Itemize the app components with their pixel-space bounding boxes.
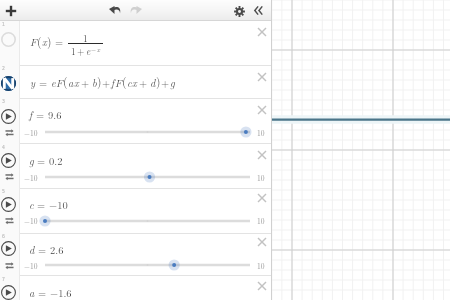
staticText: f xyxy=(111,75,115,90)
button[interactable]: Animate slider xyxy=(1,285,16,300)
staticText: a xyxy=(68,75,74,90)
staticText: 2.6 xyxy=(50,242,64,257)
button[interactable]: Collapse expression list xyxy=(254,6,263,15)
staticText: F xyxy=(56,75,63,90)
staticText: + xyxy=(161,75,170,90)
staticText: −10 xyxy=(24,215,38,226)
staticText: = xyxy=(38,242,47,257)
staticText: ( xyxy=(37,33,42,49)
button[interactable]: Animate slider xyxy=(1,109,16,124)
staticText: = xyxy=(37,197,46,212)
staticText: e xyxy=(51,75,56,90)
button[interactable]: Animate slider xyxy=(1,197,16,212)
staticText: = xyxy=(55,34,64,49)
staticText: ) xyxy=(156,73,161,89)
button[interactable]: Slider direction xyxy=(5,129,14,136)
button[interactable]: Delete expression 2 xyxy=(258,73,266,81)
staticText: 0.2 xyxy=(49,153,63,168)
staticText: 1 xyxy=(83,31,88,44)
staticText: −10 xyxy=(24,260,38,271)
staticText: b xyxy=(92,75,97,90)
staticText: 7 xyxy=(2,277,5,282)
staticText: + xyxy=(102,75,111,90)
staticText: ) xyxy=(47,33,52,49)
staticText: 1 xyxy=(71,44,76,57)
button[interactable]: Settings xyxy=(234,6,245,17)
staticText: ) xyxy=(97,73,102,89)
staticText: 10 xyxy=(257,215,265,226)
staticText: + xyxy=(139,75,148,90)
staticText: −10 xyxy=(24,127,38,138)
staticText: c xyxy=(29,197,34,212)
staticText: 10 xyxy=(257,127,265,138)
staticText: 9.6 xyxy=(48,107,62,122)
staticText: + xyxy=(77,44,85,57)
staticText: 10 xyxy=(257,260,265,271)
button[interactable]: f slider xyxy=(33,125,262,139)
staticText: d xyxy=(29,242,35,257)
button[interactable]: Slider direction xyxy=(5,217,14,224)
button[interactable]: Delete expression 6 xyxy=(258,238,266,246)
staticText: −10 xyxy=(24,172,38,183)
staticText: c xyxy=(127,75,132,90)
staticText: F xyxy=(30,34,37,49)
staticText: f xyxy=(29,107,33,122)
button[interactable]: Slider direction xyxy=(5,173,14,180)
staticText: −1.6 xyxy=(50,285,72,300)
staticText: 1 xyxy=(2,22,5,27)
button[interactable]: Delete expression 7 xyxy=(258,282,266,290)
staticText: + xyxy=(81,75,90,90)
staticText: = xyxy=(38,285,47,300)
staticText: ( xyxy=(63,73,68,89)
staticText: 4 xyxy=(2,145,5,150)
staticText: = xyxy=(36,107,45,122)
button[interactable]: Delete expression 1 xyxy=(258,28,266,36)
button[interactable]: g slider xyxy=(33,170,262,184)
staticText: y xyxy=(30,75,36,90)
staticText: g xyxy=(170,75,175,90)
button[interactable]: Delete expression 4 xyxy=(258,151,266,159)
staticText: g xyxy=(29,153,34,168)
button[interactable]: Animate slider xyxy=(1,241,16,256)
staticText: = xyxy=(39,75,48,90)
staticText: d xyxy=(150,75,156,90)
button[interactable]: c slider xyxy=(33,214,262,228)
staticText: F xyxy=(115,75,122,90)
staticText: x xyxy=(74,75,79,90)
button[interactable]: Undo xyxy=(109,6,121,14)
staticText: x xyxy=(132,75,137,90)
button[interactable]: Redo xyxy=(130,6,142,14)
button[interactable]: Toggle graph for expression 2 xyxy=(1,76,16,91)
staticText: x xyxy=(42,34,47,49)
staticText: 3 xyxy=(2,99,5,104)
button[interactable]: Toggle graph for expression 1 xyxy=(1,32,16,47)
button[interactable]: Delete expression 5 xyxy=(258,194,266,202)
staticText: 6 xyxy=(2,234,5,239)
staticText: 5 xyxy=(2,189,5,194)
staticText: x xyxy=(97,45,101,54)
button[interactable]: Delete expression 3 xyxy=(258,106,266,114)
staticText: 2 xyxy=(2,66,5,71)
staticText: −10 xyxy=(49,197,68,212)
staticText: = xyxy=(37,153,46,168)
staticText: e xyxy=(86,44,91,57)
button[interactable]: Add expression xyxy=(6,6,16,16)
staticText: a xyxy=(29,285,35,300)
staticText: − xyxy=(91,45,97,54)
button[interactable]: Slider direction xyxy=(5,262,14,269)
button[interactable]: Animate slider xyxy=(1,153,16,168)
staticText: ( xyxy=(122,73,127,89)
staticText: 10 xyxy=(257,172,265,183)
button[interactable]: d slider xyxy=(33,258,262,272)
